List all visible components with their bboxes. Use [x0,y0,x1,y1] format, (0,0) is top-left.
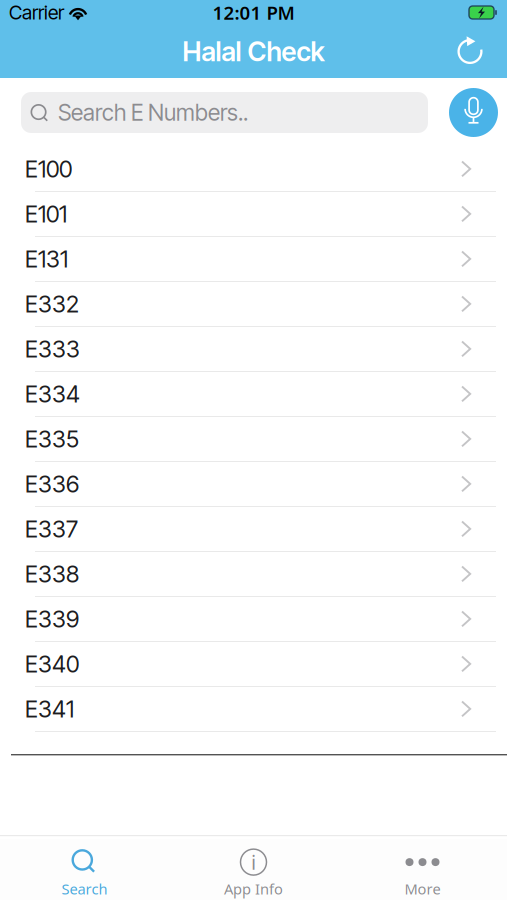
button[interactable]: E332 [0,282,507,327]
button[interactable]: E334 [0,372,507,417]
staticText: E333 [25,335,80,363]
staticText: E337 [25,515,78,543]
button[interactable]: E333 [0,327,507,372]
staticText: E341 [25,695,74,723]
staticText: App Info [224,879,283,899]
staticText: Search E Numbers.. [58,99,248,126]
staticText: Carrier [9,1,64,24]
staticText: E338 [25,560,79,588]
button[interactable]: E339 [0,597,507,642]
staticText: Halal Check [182,35,324,68]
button[interactable]: E341 [0,687,507,732]
button[interactable]: Voice search [449,88,498,137]
staticText: E340 [25,650,79,678]
staticText: 12:01 PM [212,0,294,25]
button[interactable]: Search [0,836,169,900]
staticText: E336 [25,470,79,498]
button[interactable]: E336 [0,462,507,507]
button[interactable]: E101 [0,192,507,237]
button[interactable]: E335 [0,417,507,462]
button[interactable]: E100 [0,147,507,192]
button[interactable]: Search E Numbers.. [21,92,428,133]
staticText: E339 [25,605,79,633]
staticText: i [251,849,256,875]
button[interactable]: E340 [0,642,507,687]
button[interactable]: i [169,836,338,900]
staticText: E334 [25,380,80,408]
staticText: E100 [25,155,72,183]
staticText: E332 [25,290,79,318]
button[interactable]: E338 [0,552,507,597]
staticText: E101 [25,200,67,228]
staticText: E335 [25,425,79,453]
button[interactable]: E131 [0,237,507,282]
staticText: More [404,879,440,899]
button[interactable]: Refresh [449,29,493,73]
button[interactable]: E337 [0,507,507,552]
button[interactable]: More [338,836,507,900]
staticText: Search [61,879,107,899]
staticText: E131 [25,245,68,273]
